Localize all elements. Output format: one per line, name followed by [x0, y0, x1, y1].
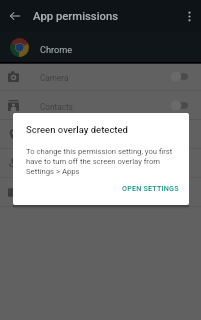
button[interactable]: Location	[0, 120, 201, 149]
button[interactable]: Chrome	[0, 32, 201, 62]
staticText: OPEN SETTINGS	[122, 184, 179, 192]
staticText: To change this permission setting, you f…	[26, 147, 177, 176]
button[interactable]: OPEN SETTINGS	[118, 181, 183, 195]
staticText: Contacts	[40, 102, 73, 112]
button[interactable]: More options	[178, 5, 200, 27]
button[interactable]: Camera	[0, 62, 201, 91]
staticText: App permissions	[33, 10, 119, 23]
staticText: Microphone	[40, 160, 84, 170]
staticText: Chrome	[40, 44, 73, 55]
button[interactable]: Navigate up	[4, 5, 26, 27]
button[interactable]: Storage	[0, 178, 201, 207]
staticText: Camera	[40, 73, 69, 83]
staticText: Location	[40, 131, 72, 141]
button[interactable]: Microphone	[0, 149, 201, 178]
button[interactable]: Contacts	[0, 91, 201, 120]
staticText: Screen overlay detected	[26, 124, 128, 135]
